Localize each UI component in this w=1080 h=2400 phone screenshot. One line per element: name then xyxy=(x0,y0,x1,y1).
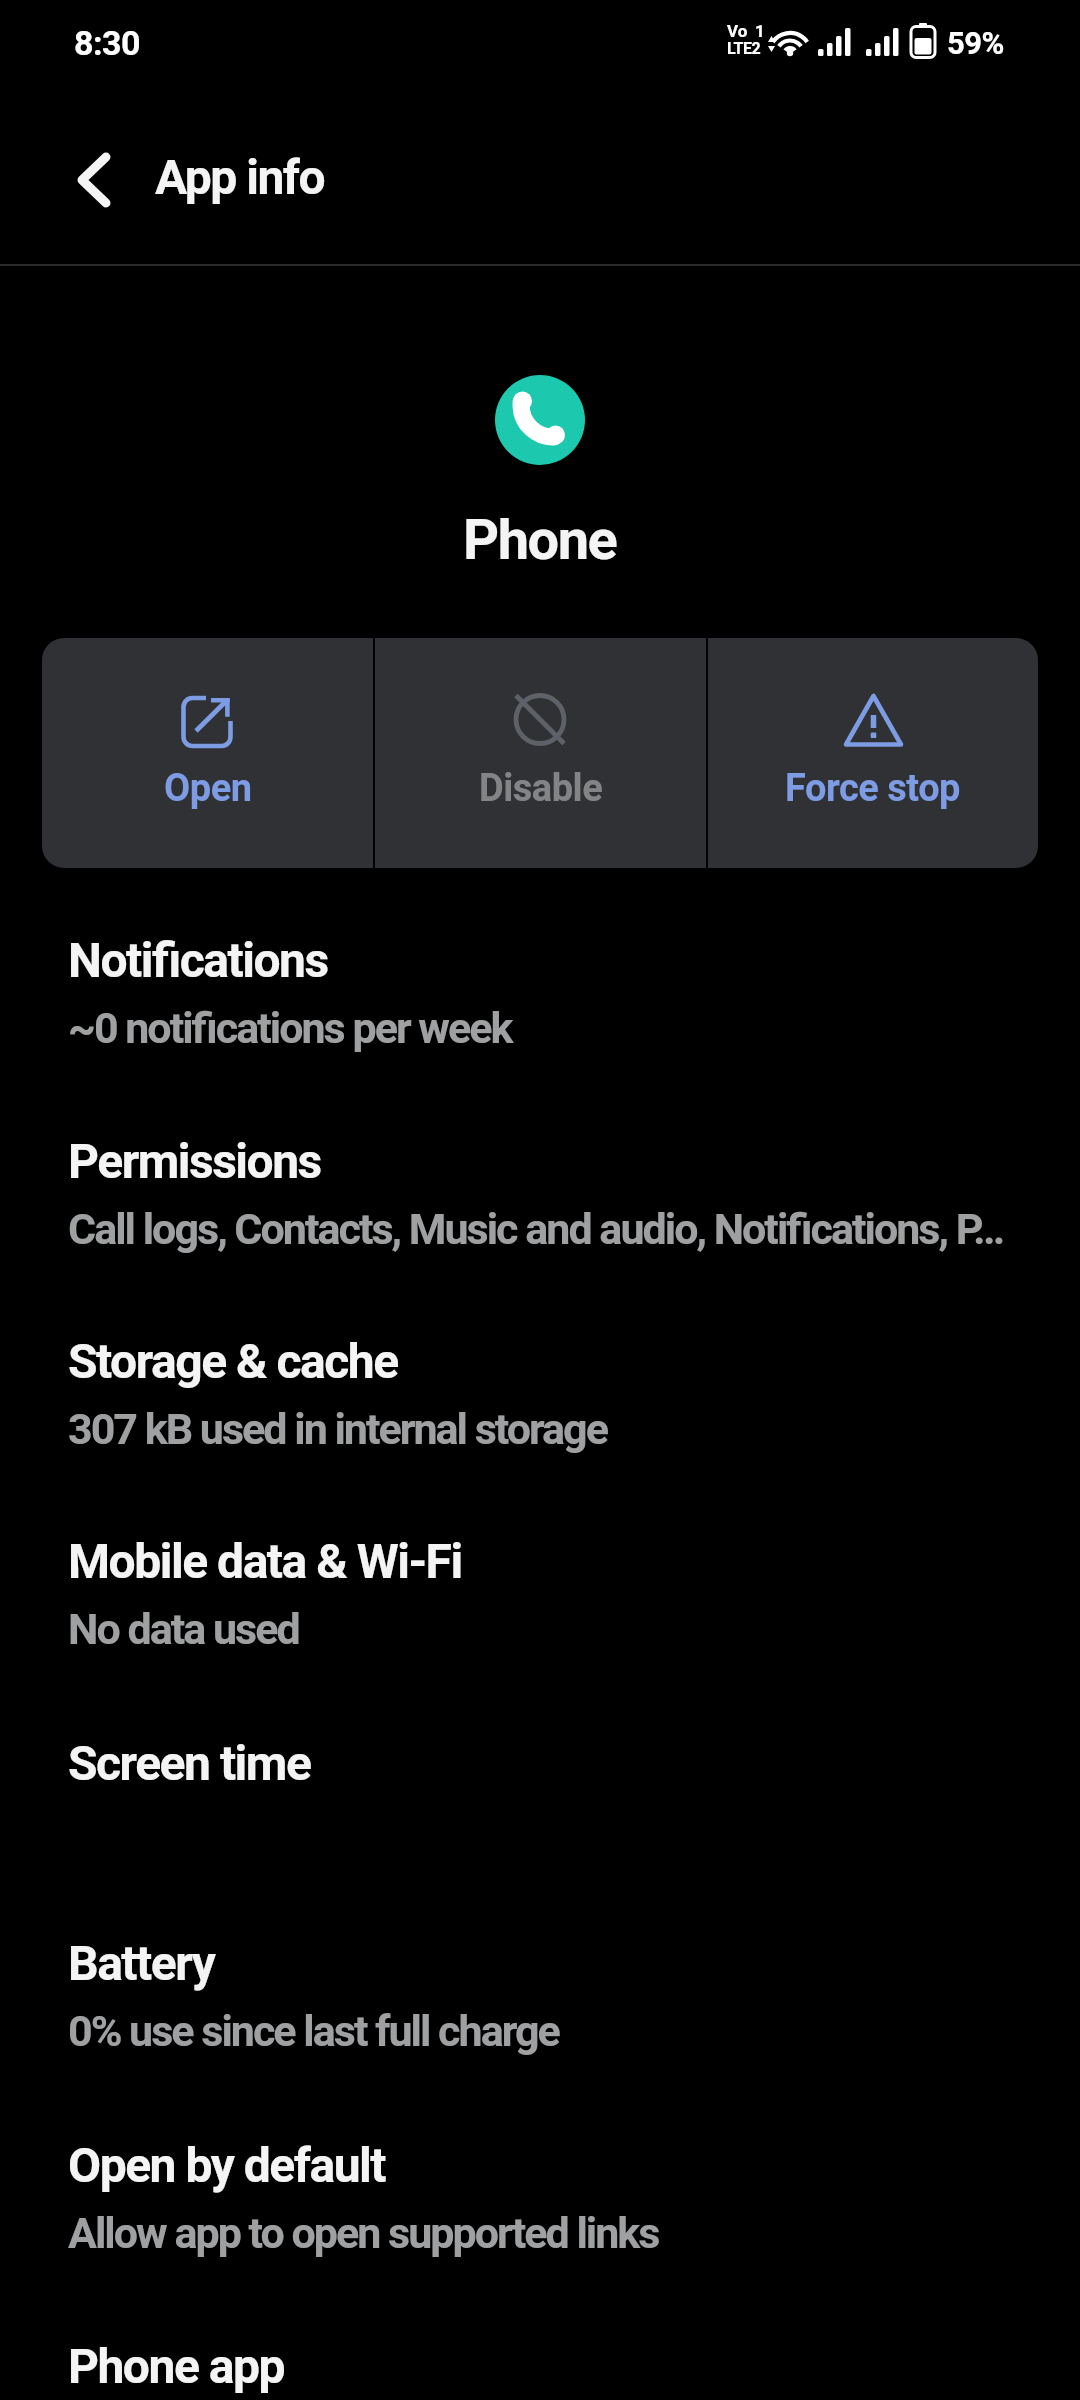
staticText: Phone xyxy=(463,507,617,573)
staticText: No data used xyxy=(68,1604,1058,1654)
button[interactable]: Storage & cache xyxy=(0,1301,1080,1491)
staticText: Vo xyxy=(727,21,748,41)
staticText: Force stop xyxy=(785,766,961,811)
button[interactable]: Mobile data & Wi-Fi xyxy=(0,1501,1080,1691)
staticText: 307 kB used in internal storage xyxy=(68,1404,1058,1454)
button[interactable]: Phone app xyxy=(0,2306,1080,2400)
staticText: Notifications xyxy=(68,932,328,988)
button[interactable]: Notifications xyxy=(0,900,1080,1090)
staticText: Storage & cache xyxy=(68,1333,398,1389)
staticText: Mobile data & Wi-Fi xyxy=(68,1533,462,1589)
staticText: Battery xyxy=(68,1935,215,1991)
staticText: App info xyxy=(155,149,325,205)
staticText: Screen time xyxy=(68,1735,311,1791)
button[interactable]: Permissions xyxy=(0,1101,1080,1291)
button[interactable]: Open xyxy=(42,638,373,868)
button[interactable]: Battery xyxy=(0,1903,1080,2093)
staticText: 0% use since last full charge xyxy=(68,2006,1058,2056)
button[interactable]: Screen time xyxy=(0,1703,1080,1893)
button[interactable] xyxy=(50,140,140,220)
staticText: Open xyxy=(164,766,252,811)
staticText: Allow app to open supported links xyxy=(68,2208,1058,2258)
staticText: Call logs, Contacts, Music and audio, No… xyxy=(68,1204,1058,1254)
button[interactable]: Open by default xyxy=(0,2105,1080,2295)
staticText: Open by default xyxy=(68,2137,386,2193)
staticText: Permissions xyxy=(68,1133,321,1189)
staticText: 59% xyxy=(947,25,1004,61)
staticText: ~0 notifications per week xyxy=(68,1003,1058,1053)
staticText: Phone app xyxy=(68,2338,285,2394)
button[interactable]: Disable xyxy=(375,638,706,868)
staticText: Disable xyxy=(479,766,603,811)
staticText: LTE2 xyxy=(727,39,761,58)
button[interactable]: Force stop xyxy=(708,638,1038,868)
staticText: 8:30 xyxy=(74,23,141,63)
staticText: 1 xyxy=(755,21,765,41)
